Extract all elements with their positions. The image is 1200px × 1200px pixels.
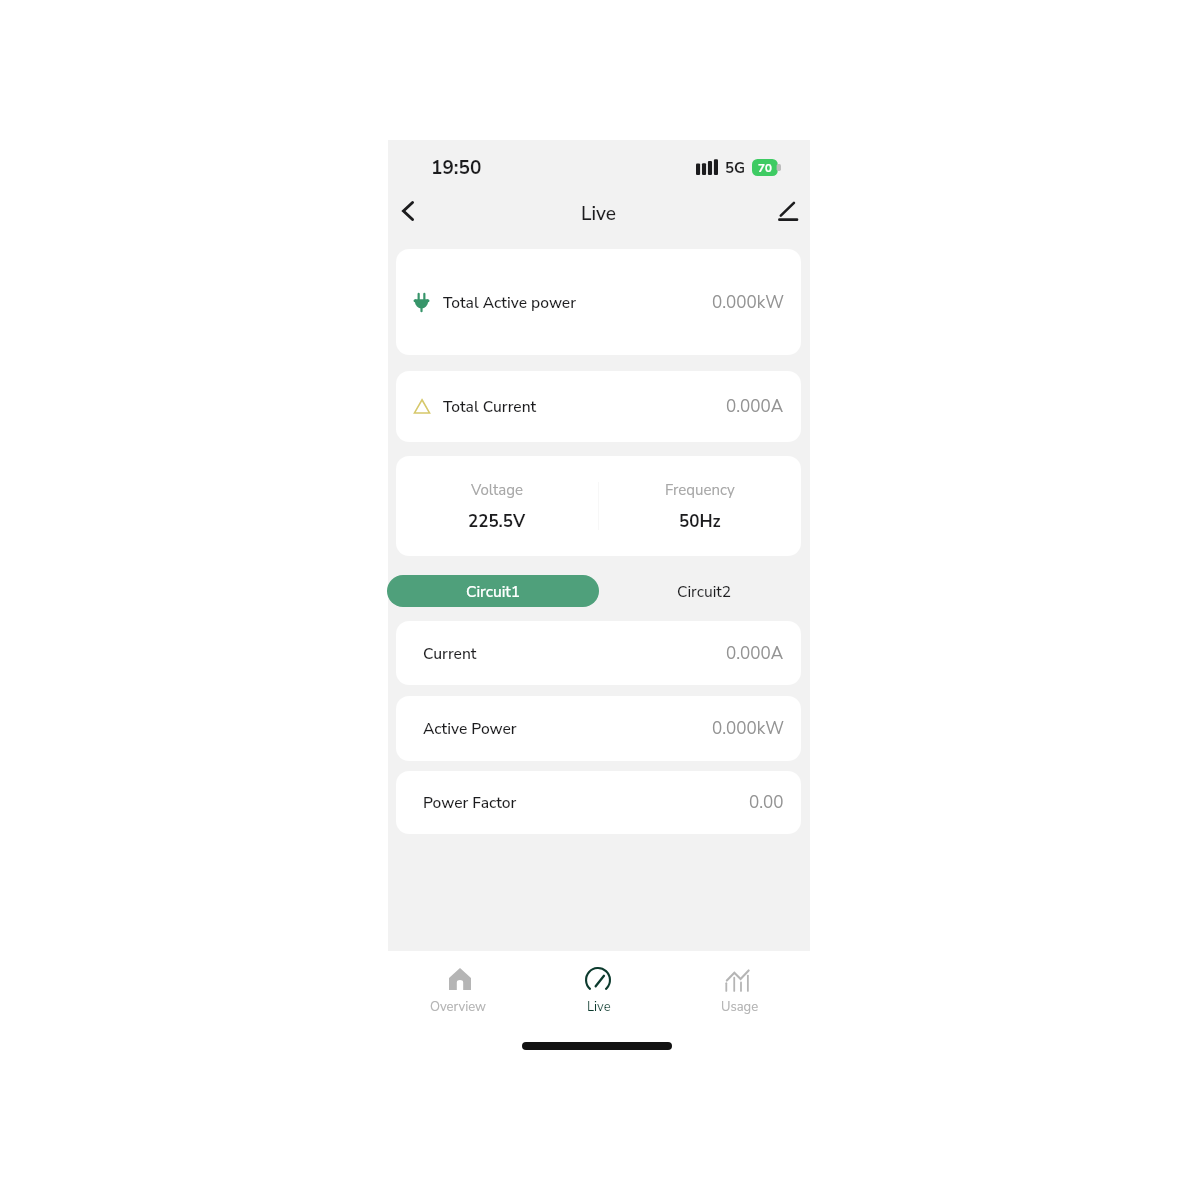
button[interactable]: Live xyxy=(528,966,669,1016)
staticText: Circuit2 xyxy=(677,581,732,602)
staticText: Frequency xyxy=(665,480,735,500)
staticText: Active Power xyxy=(423,718,517,739)
staticText: 50Hz xyxy=(679,510,721,533)
staticText: 0.000A xyxy=(726,395,784,418)
button[interactable]: Back xyxy=(391,194,425,228)
button[interactable]: Active Power xyxy=(396,696,801,761)
staticText: Live xyxy=(581,201,617,227)
button[interactable]: Circuit2 xyxy=(599,575,810,607)
staticText: 0.000kW xyxy=(712,291,784,314)
button[interactable]: Edit xyxy=(771,194,805,228)
staticText: Total Current xyxy=(443,396,537,417)
staticText: 70 xyxy=(758,160,772,176)
staticText: Power Factor xyxy=(423,792,517,813)
staticText: Total Active power xyxy=(443,292,576,313)
staticText: 225.5V xyxy=(468,510,526,533)
staticText: 0.000A xyxy=(726,642,784,665)
staticText: Current xyxy=(423,643,477,664)
button[interactable]: Circuit1 xyxy=(387,575,599,607)
staticText: Circuit1 xyxy=(466,581,521,602)
button[interactable]: Total Current xyxy=(396,371,801,442)
button[interactable]: Overview xyxy=(388,966,528,1016)
staticText: 5G xyxy=(725,158,746,178)
button[interactable]: Usage xyxy=(669,966,810,1016)
staticText: Live xyxy=(587,998,611,1016)
staticText: Voltage xyxy=(471,480,524,500)
staticText: Overview xyxy=(430,998,487,1016)
button[interactable]: Current xyxy=(396,621,801,685)
staticText: 19:50 xyxy=(431,155,482,181)
staticText: 0.00 xyxy=(749,791,784,814)
button[interactable]: Power Factor xyxy=(396,771,801,834)
staticText: Usage xyxy=(721,998,759,1016)
button[interactable]: Total Active power xyxy=(396,249,801,355)
staticText: 0.000kW xyxy=(712,717,784,740)
